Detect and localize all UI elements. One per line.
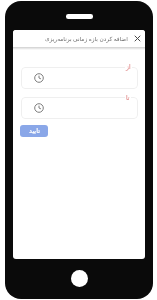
button[interactable] <box>21 67 138 89</box>
button[interactable]: تایید <box>20 125 48 137</box>
staticText: از <box>126 63 131 70</box>
button[interactable] <box>21 97 138 119</box>
staticText: تا <box>126 94 130 101</box>
staticText: تایید <box>29 127 40 135</box>
staticText: اضافه کردن بازه زمانی برنامه‌ریزی <box>45 35 128 43</box>
button[interactable] <box>134 35 141 42</box>
